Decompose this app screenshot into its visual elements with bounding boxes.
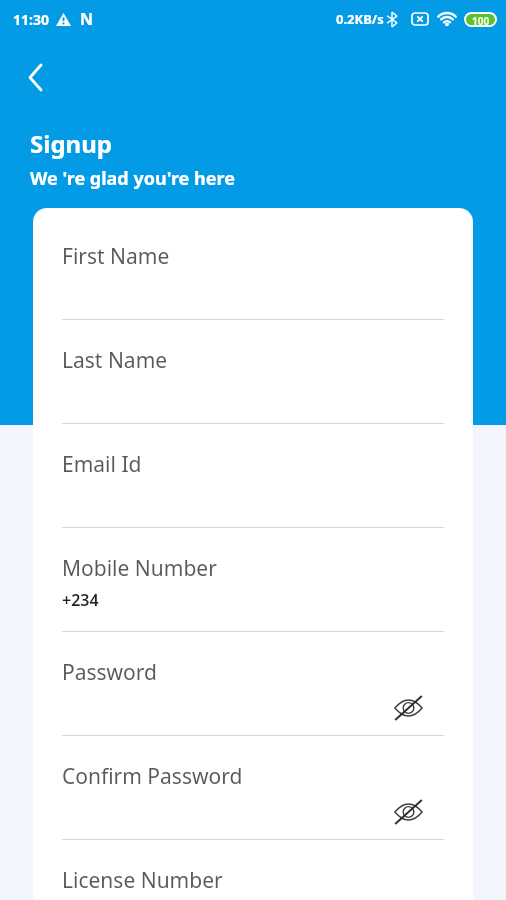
staticText: Password [62,658,157,687]
button[interactable]: Email Id [62,450,444,554]
button[interactable]: First Name [62,242,444,346]
button[interactable] [394,695,423,721]
staticText: We 're glad you're here [30,166,235,191]
staticText: Last Name [62,346,168,375]
button[interactable]: License Number [62,866,444,900]
staticText: +234 [62,589,99,611]
staticText: Signup [30,127,112,160]
staticText: First Name [62,242,170,271]
button[interactable]: Confirm Password [62,762,444,866]
button[interactable]: Last Name [62,346,444,450]
staticText: Confirm Password [62,762,243,791]
button[interactable] [15,57,55,97]
button[interactable] [394,799,423,825]
staticText: N [80,8,94,30]
staticText: 100 [472,14,490,25]
staticText: Mobile Number [62,554,217,583]
staticText: License Number [62,866,223,895]
button[interactable]: Mobile Number [62,554,444,658]
staticText: 11:30 [13,10,49,29]
button[interactable]: Password [62,658,444,762]
staticText: 0.2KB/s [336,10,384,28]
staticText: Email Id [62,450,142,479]
